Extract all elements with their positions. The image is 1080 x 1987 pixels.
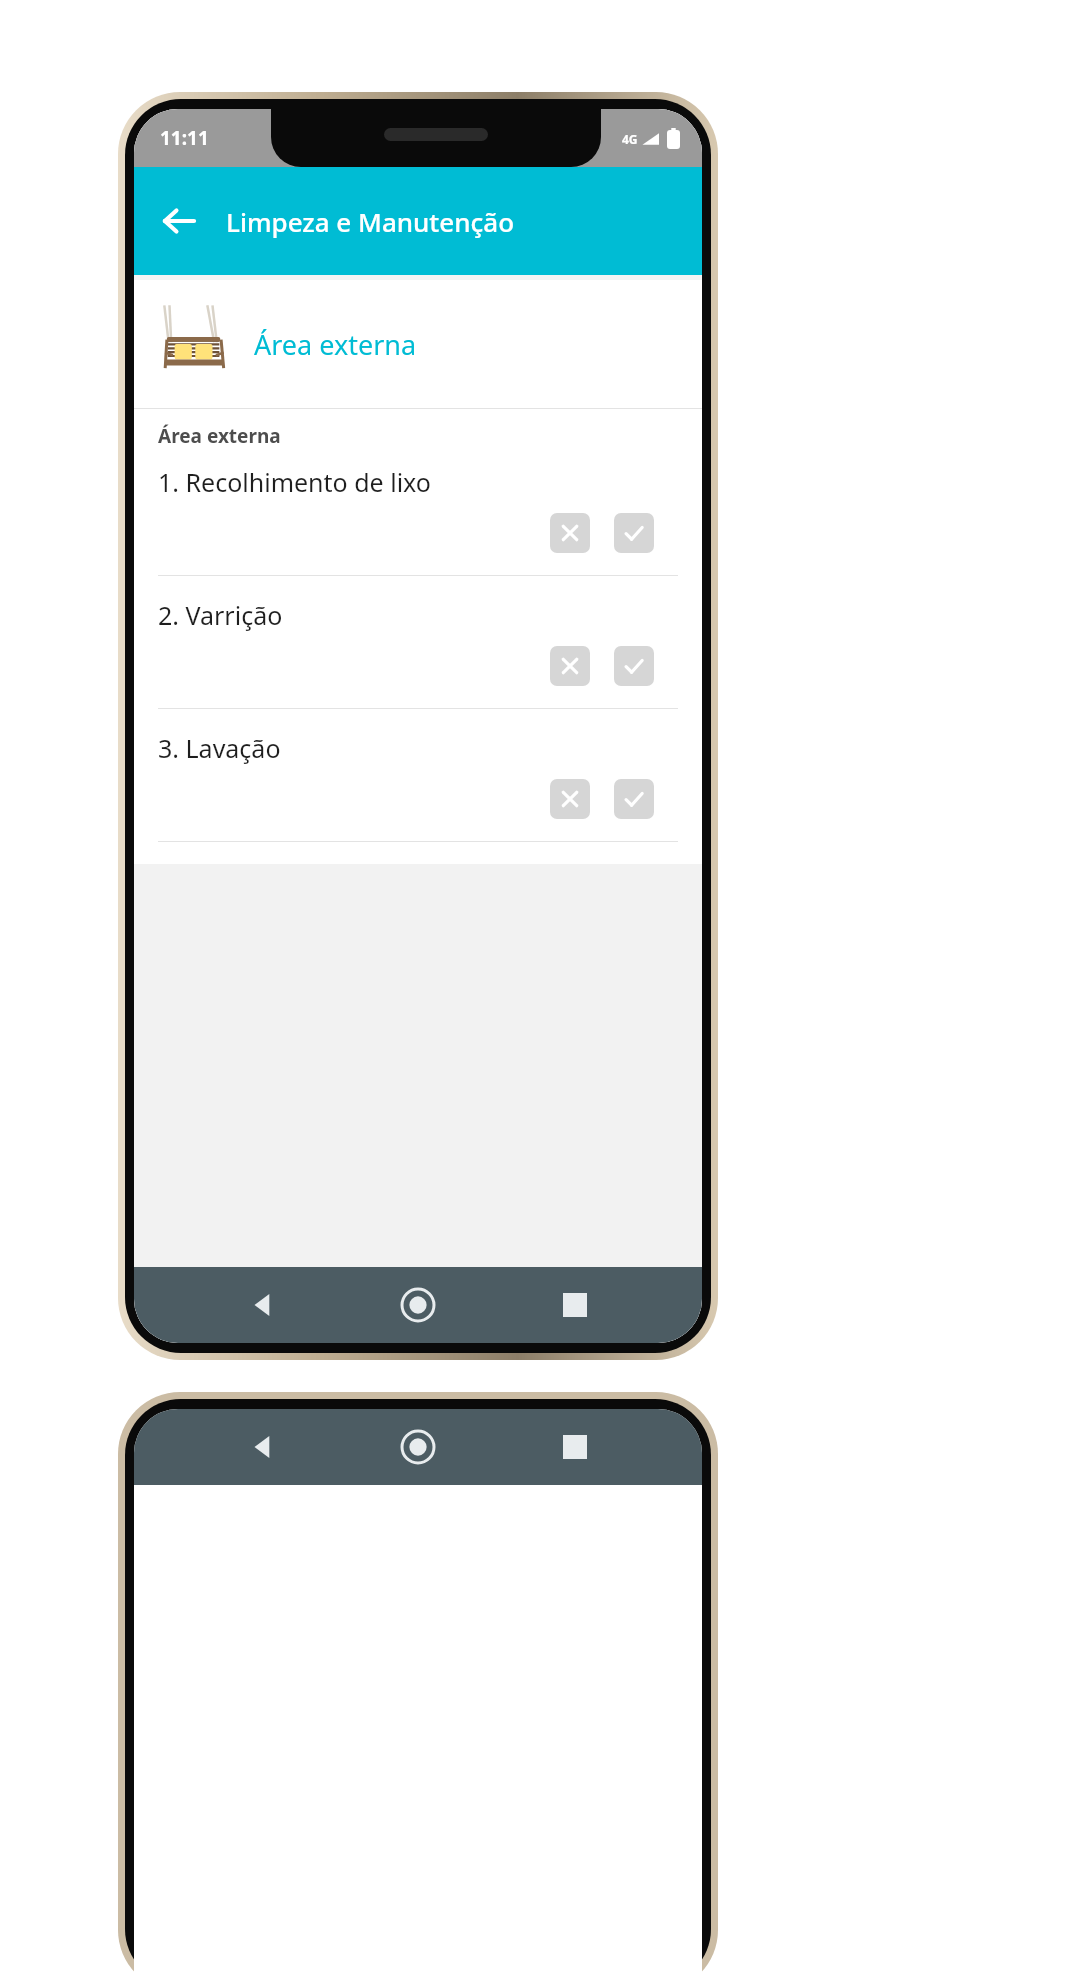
button[interactable]: Mark done [614, 646, 654, 686]
staticText: Área externa [158, 423, 281, 449]
button[interactable]: Mark not done [550, 646, 590, 686]
button[interactable]: 1. Recolhimento de lixo [134, 465, 702, 598]
button[interactable]: Back [231, 1275, 291, 1335]
button[interactable]: Recents [545, 1417, 605, 1477]
button[interactable]: Mark done [614, 779, 654, 819]
staticText: 3. Lavação [158, 731, 281, 765]
button[interactable]: Back [148, 190, 210, 252]
button[interactable]: Área externa [134, 280, 702, 408]
staticText: 11:11 [160, 125, 209, 151]
staticText: 1. Recolhimento de lixo [158, 465, 431, 499]
button[interactable]: Recents [545, 1275, 605, 1335]
button[interactable]: 3. Lavação [134, 731, 702, 864]
button[interactable]: Back [231, 1417, 291, 1477]
staticText: 4G [622, 131, 638, 147]
button[interactable]: Mark not done [550, 513, 590, 553]
button[interactable]: Home [388, 1275, 448, 1335]
button[interactable]: Mark done [614, 513, 654, 553]
staticText: 2. Varrição [158, 598, 283, 632]
staticText: Limpeza e Manutenção [226, 204, 515, 239]
staticText: Área externa [254, 326, 417, 363]
button[interactable]: Home [388, 1417, 448, 1477]
button[interactable]: 2. Varrição [134, 598, 702, 731]
button[interactable]: Mark not done [550, 779, 590, 819]
